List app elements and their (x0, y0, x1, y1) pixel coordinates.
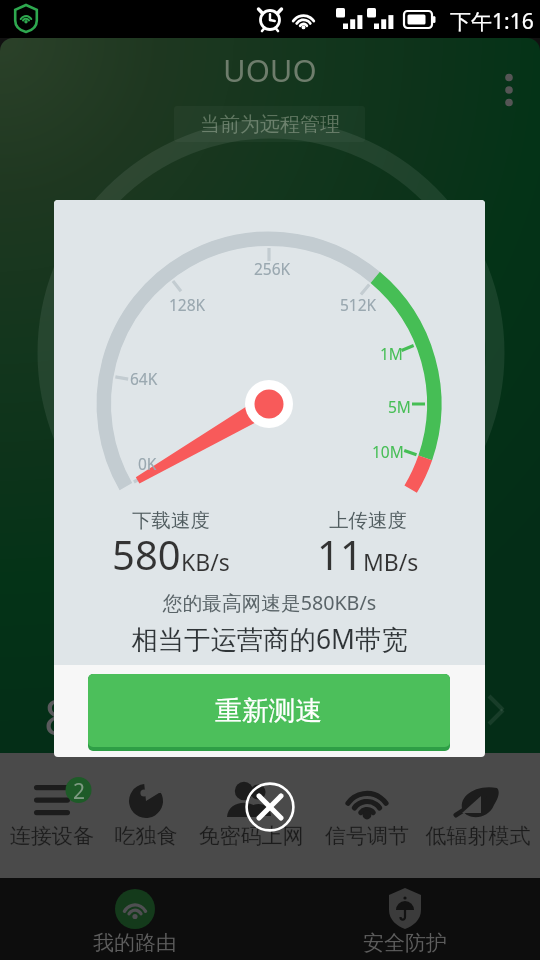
staticText: 连接设备 (0, 823, 106, 849)
staticText: 吃独食 (92, 823, 200, 849)
staticText: 64K (130, 368, 158, 389)
button[interactable]: 2 (0, 760, 106, 860)
staticText: 重新测速 (215, 694, 323, 728)
button[interactable]: 当前为远程管理 (174, 106, 365, 142)
button[interactable]: 低辐射模式 (424, 760, 532, 860)
staticText: UOUO (223, 49, 317, 91)
staticText: 下载速度 (132, 508, 210, 533)
staticText: 安全防护 (345, 930, 465, 956)
staticText: 信号调节 (313, 823, 421, 849)
button[interactable]: 重新测速 (88, 674, 450, 751)
staticText: 580 (112, 527, 181, 581)
staticText: 8 (44, 682, 73, 750)
button[interactable]: 信号调节 (313, 760, 421, 860)
staticText: 我的路由 (75, 930, 195, 956)
staticText: 上传速度 (329, 508, 407, 533)
staticText: 10M (372, 441, 404, 462)
button[interactable]: Close (244, 781, 296, 833)
staticText: 当前为远程管理 (200, 112, 340, 137)
staticText: 2 (73, 777, 86, 803)
staticText: 低辐射模式 (424, 823, 532, 849)
staticText: 256K (254, 258, 291, 279)
button[interactable]: 免密码上网 (197, 760, 305, 860)
staticText: MB/s (363, 546, 419, 577)
staticText: KB/s (181, 546, 230, 577)
staticText: 0K (138, 453, 157, 474)
button[interactable]: 安全防护 (345, 878, 465, 960)
staticText: 相当于运营商的6M带宽 (54, 621, 485, 657)
staticText: 5M (388, 396, 411, 417)
staticText: 下午1:16 (450, 7, 534, 36)
staticText: 1M (380, 343, 403, 364)
staticText: 11 (317, 527, 363, 581)
staticText: 128K (169, 294, 206, 315)
button[interactable]: 我的路由 (75, 878, 195, 960)
staticText: 512K (340, 294, 377, 315)
staticText: 您的最高网速是580KB/s (54, 589, 485, 616)
button[interactable]: More options (493, 74, 525, 106)
button[interactable]: 吃独食 (92, 760, 200, 860)
staticText: 免密码上网 (197, 823, 305, 849)
